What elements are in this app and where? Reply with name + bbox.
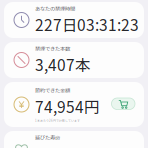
staticText: 延びた寿命 [35,133,60,141]
button[interactable]: 節約できた金額 [4,82,144,127]
staticText: 3,407本 [35,53,90,76]
button[interactable]: 禁煙できた本数 [4,42,144,78]
staticText: 禁煙できた本数 [35,44,70,52]
button[interactable]: タバコ代を計算 [111,98,135,109]
button[interactable]: あなたの禁煙時間 [4,2,144,38]
staticText: 1本あたり26円で計算しています [35,118,80,123]
button[interactable]: 延びた寿命 [4,131,144,148]
staticText: 227日03:31:23 [35,13,139,36]
staticText: あなたの禁煙時間 [35,4,75,12]
staticText: 74,954円 [35,95,99,117]
staticText: 節約できた金額 [35,86,70,94]
